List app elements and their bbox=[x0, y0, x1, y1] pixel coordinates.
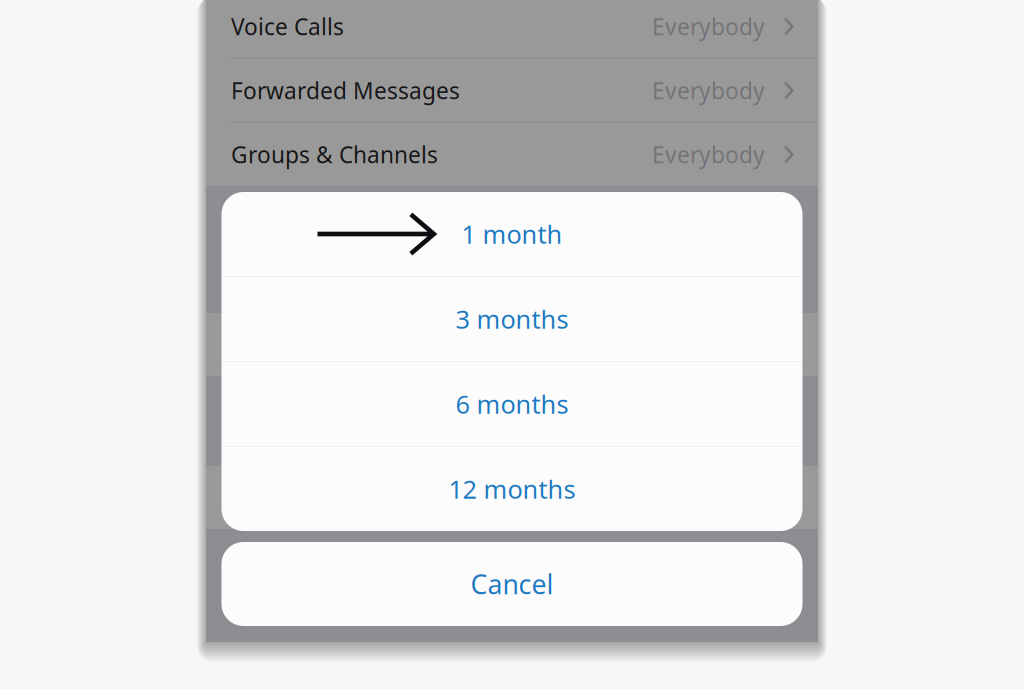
staticText: Cancel bbox=[470, 566, 553, 602]
staticText: Everybody bbox=[652, 139, 765, 169]
staticText: 12 months bbox=[448, 472, 575, 506]
staticText: Everybody bbox=[652, 75, 765, 105]
button[interactable]: Cancel bbox=[221, 542, 802, 626]
button[interactable]: Voice Calls bbox=[206, 0, 818, 58]
staticText: Forwarded Messages bbox=[231, 75, 460, 105]
staticText: 6 months bbox=[455, 387, 568, 421]
button[interactable]: Groups & Channels bbox=[206, 123, 818, 186]
staticText: Voice Calls bbox=[231, 11, 344, 41]
staticText: Groups & Channels bbox=[231, 139, 438, 169]
staticText: Everybody bbox=[652, 11, 765, 41]
button[interactable]: 6 months bbox=[221, 362, 802, 446]
button[interactable]: 3 months bbox=[221, 277, 802, 361]
staticText: 3 months bbox=[455, 302, 568, 336]
button[interactable]: 1 month bbox=[221, 192, 802, 276]
button[interactable]: Forwarded Messages bbox=[206, 59, 818, 122]
staticText: 1 month bbox=[461, 217, 562, 251]
button[interactable]: 12 months bbox=[221, 447, 802, 531]
